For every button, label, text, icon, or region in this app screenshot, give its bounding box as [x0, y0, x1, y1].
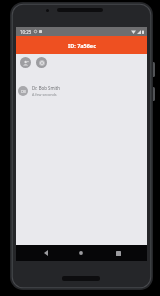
staticText: Dr. Bob Smith [32, 85, 60, 91]
button[interactable] [110, 245, 126, 261]
staticText: 10:25 [20, 29, 32, 35]
button[interactable]: DB [16, 84, 147, 98]
button[interactable] [73, 245, 89, 261]
button[interactable] [20, 57, 31, 68]
button[interactable] [36, 57, 47, 68]
button[interactable] [38, 245, 54, 261]
staticText: DB [21, 89, 26, 94]
staticText: ID: 7a56ec [68, 42, 96, 49]
staticText: A few seconds [32, 92, 57, 97]
